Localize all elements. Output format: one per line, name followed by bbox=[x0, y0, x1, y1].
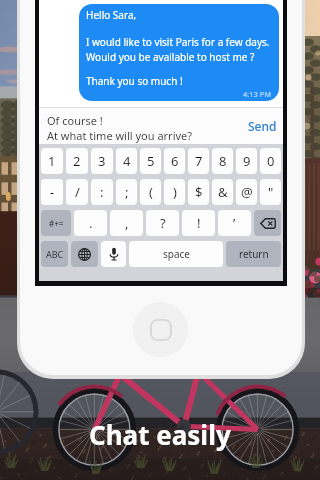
staticText: 3 bbox=[98, 152, 106, 170]
button[interactable]: . bbox=[74, 210, 107, 236]
staticText: " bbox=[268, 183, 274, 201]
button[interactable]: ! bbox=[182, 210, 215, 236]
button[interactable]: 0 bbox=[260, 148, 281, 174]
staticText: : bbox=[100, 183, 104, 201]
staticText: 4 bbox=[123, 152, 131, 170]
button[interactable]: space bbox=[129, 241, 223, 267]
staticText: ( bbox=[149, 183, 153, 201]
button[interactable]: ) bbox=[164, 179, 185, 205]
button[interactable]: 1 bbox=[41, 148, 63, 174]
staticText: Of course ! bbox=[47, 113, 103, 128]
staticText: 9 bbox=[243, 152, 251, 170]
staticText: At what time will you arrive? bbox=[47, 128, 193, 143]
staticText: 5 bbox=[147, 152, 155, 170]
staticText: / bbox=[75, 183, 80, 201]
button[interactable]: 9 bbox=[236, 148, 257, 174]
staticText: Thank you so much ! bbox=[86, 74, 183, 88]
button[interactable]: Dictation bbox=[101, 241, 126, 267]
button[interactable]: return bbox=[226, 241, 281, 267]
staticText: Chat easily bbox=[89, 417, 231, 452]
button[interactable]: 8 bbox=[212, 148, 233, 174]
button[interactable]: @ bbox=[236, 179, 257, 205]
button[interactable]: , bbox=[110, 210, 143, 236]
staticText: ? bbox=[160, 214, 166, 232]
button[interactable]: Home bbox=[133, 302, 188, 357]
staticText: - bbox=[50, 183, 55, 201]
button[interactable]: 4 bbox=[116, 148, 137, 174]
button[interactable]: 5 bbox=[140, 148, 161, 174]
staticText: 0 bbox=[267, 152, 275, 170]
button[interactable]: $ bbox=[188, 179, 209, 205]
staticText: 6 bbox=[171, 152, 179, 170]
button[interactable]: / bbox=[66, 179, 88, 205]
staticText: ABC bbox=[46, 248, 64, 260]
button[interactable]: ’ bbox=[218, 210, 251, 236]
staticText: , bbox=[125, 214, 129, 232]
staticText: return bbox=[239, 247, 269, 261]
button[interactable]: 6 bbox=[164, 148, 185, 174]
staticText: ) bbox=[173, 183, 177, 201]
button[interactable]: ABC bbox=[41, 241, 68, 267]
button[interactable]: ; bbox=[116, 179, 137, 205]
staticText: Send bbox=[248, 118, 277, 134]
staticText: 8 bbox=[219, 152, 227, 170]
button[interactable]: ( bbox=[140, 179, 161, 205]
button[interactable]: Backspace bbox=[254, 210, 281, 236]
button[interactable]: #+= bbox=[41, 210, 71, 236]
staticText: I would like to visit Paris for a few da… bbox=[86, 35, 270, 64]
staticText: 1 bbox=[48, 152, 56, 170]
staticText: #+= bbox=[49, 218, 64, 229]
button[interactable]: - bbox=[41, 179, 63, 205]
staticText: Hello Sara, bbox=[86, 8, 137, 22]
button[interactable]: & bbox=[212, 179, 233, 205]
staticText: & bbox=[218, 183, 228, 201]
button[interactable]: 3 bbox=[91, 148, 113, 174]
staticText: . bbox=[89, 214, 93, 232]
staticText: ’ bbox=[233, 214, 236, 232]
staticText: $ bbox=[195, 183, 203, 201]
button[interactable]: 2 bbox=[66, 148, 88, 174]
staticText: 4:13 PM bbox=[243, 89, 272, 99]
button[interactable]: " bbox=[260, 179, 281, 205]
button[interactable]: 7 bbox=[188, 148, 209, 174]
button[interactable]: : bbox=[91, 179, 113, 205]
staticText: 2 bbox=[73, 152, 81, 170]
button[interactable]: Send bbox=[238, 110, 283, 142]
staticText: @ bbox=[241, 183, 253, 201]
staticText: space bbox=[163, 247, 190, 261]
button[interactable]: ? bbox=[146, 210, 179, 236]
staticText: 7 bbox=[195, 152, 203, 170]
staticText: ; bbox=[125, 183, 129, 201]
staticText: ! bbox=[197, 214, 201, 232]
button[interactable]: Change keyboard bbox=[71, 241, 98, 267]
